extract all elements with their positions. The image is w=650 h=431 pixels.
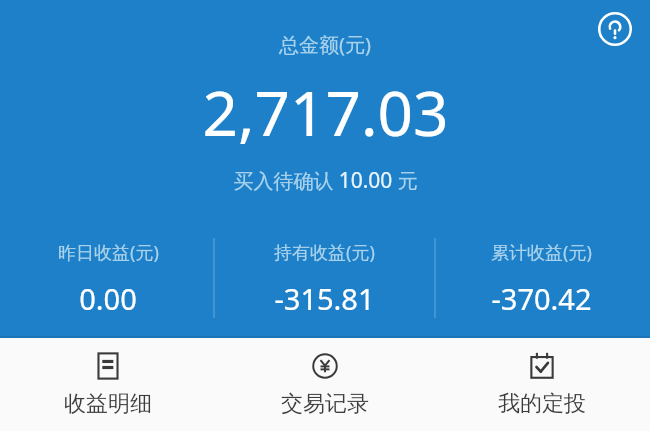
staticText: -315.81 xyxy=(274,279,375,318)
button[interactable]: Help xyxy=(592,6,638,52)
staticText: 2,717.03 xyxy=(202,70,449,154)
staticText: 总金额(元) xyxy=(279,31,371,58)
button[interactable]: 收益明细 xyxy=(0,338,216,431)
button[interactable]: 累计收益(元) xyxy=(433,240,650,318)
button[interactable]: 我的定投 xyxy=(433,338,650,431)
staticText: 我的定投 xyxy=(498,390,586,418)
staticText: -370.42 xyxy=(491,279,592,318)
button[interactable]: 交易记录 xyxy=(216,338,433,431)
button[interactable]: 昨日收益(元) xyxy=(0,240,216,318)
staticText: 0.00 xyxy=(79,279,137,318)
staticText: 收益明细 xyxy=(64,390,152,418)
staticText: 买入待确认 10.00 元 xyxy=(233,166,418,195)
staticText: 交易记录 xyxy=(281,390,369,418)
button[interactable]: 持有收益(元) xyxy=(216,240,433,318)
staticText: 昨日收益(元) xyxy=(58,240,159,265)
staticText: 累计收益(元) xyxy=(491,240,592,265)
staticText: 持有收益(元) xyxy=(274,240,375,265)
